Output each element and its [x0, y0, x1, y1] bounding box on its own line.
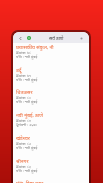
staticText: नवी मुंबई, ठाणे: [16, 112, 89, 119]
button[interactable]: नवी मुंबई, ठाणे: [13, 111, 89, 134]
button[interactable]: उर्दू: [13, 66, 89, 89]
staticText: खंडेश्वर: [16, 135, 89, 142]
staticText: पत्ता : नवी मुंबई: [16, 99, 89, 104]
staticText: पत्ता : नवी मुंबई: [16, 54, 89, 59]
staticText: क्रमांक: ७९: [16, 73, 89, 78]
staticText: क्रमांक: ७८: [16, 50, 89, 55]
button[interactable]: चितळसर: [13, 88, 89, 111]
staticText: दूरध्वनी : २५४०: [16, 122, 89, 127]
button[interactable]: App icon: [25, 34, 33, 42]
staticText: पत्ता : नवी मुंबई: [16, 145, 89, 150]
button[interactable]: मुंब्रा, दिवा शहर: [13, 179, 89, 183]
staticText: पत्ता : नवी मुंबई: [16, 77, 89, 82]
button[interactable]: श्रीनगर: [13, 157, 89, 180]
staticText: श्रीनगर: [16, 158, 89, 165]
staticText: चितळसर: [16, 89, 89, 96]
staticText: क्रमांक: ८१: [16, 118, 89, 123]
staticText: उर्दू: [16, 67, 89, 74]
staticText: पत्ता : नवी मुंबई: [16, 168, 89, 173]
button[interactable]: More options: [77, 34, 85, 42]
staticText: प्रशासकीय संकुल, नौ: [16, 44, 89, 51]
staticText: क्रमांक: ८२: [16, 141, 89, 146]
staticText: क्रमांक: ८०: [16, 95, 89, 100]
staticText: क्रमांक: ८३: [16, 164, 89, 169]
staticText: सर्व ठाणे: [49, 35, 64, 41]
button[interactable]: Back: [16, 34, 24, 42]
staticText: मुंब्रा, दिवा शहर: [16, 180, 89, 183]
button[interactable]: खंडेश्वर: [13, 134, 89, 157]
button[interactable]: प्रशासकीय संकुल, नौ: [13, 43, 89, 66]
